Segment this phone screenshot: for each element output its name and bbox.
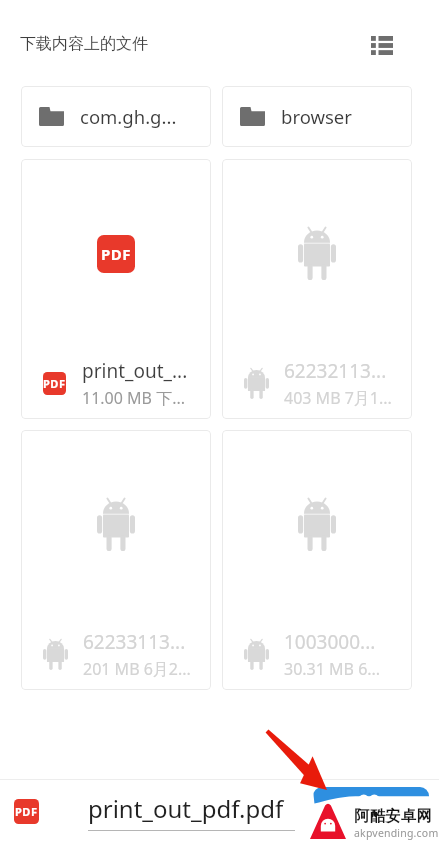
staticText: browser [281,104,352,129]
staticText: 62232113... [284,358,387,384]
staticText: print_out_pdf.pdf [88,792,284,825]
staticText: print_out_... [82,358,188,384]
staticText: akpvending.com [354,826,439,840]
staticText: PDF [43,376,66,391]
staticText: 1003000... [284,629,376,655]
staticText: com.gh.g... [80,104,177,129]
staticText: 201 MB 6月2... [83,658,191,680]
button[interactable]: Confirm [313,787,429,817]
staticText: 下载内容上的文件 [20,34,148,54]
button[interactable]: PDF [14,779,439,844]
button[interactable]: 62233113... [21,430,211,690]
button[interactable]: 1003000... [222,430,412,690]
button[interactable]: 62232113... [222,159,412,419]
staticText: 11.00 MB 下... [82,387,185,409]
staticText: 62233113... [83,629,186,655]
staticText: PDF [101,244,132,264]
button[interactable]: browser [222,86,412,147]
staticText: 403 MB 7月1... [284,387,392,409]
button[interactable]: com.gh.g... [21,86,211,147]
staticText: 阿酷安卓网 [354,807,432,826]
staticText: 30.31 MB 6... [284,658,381,680]
staticText: PDF [15,804,38,819]
button[interactable]: PDF [21,159,211,419]
button[interactable]: List view [371,36,393,55]
